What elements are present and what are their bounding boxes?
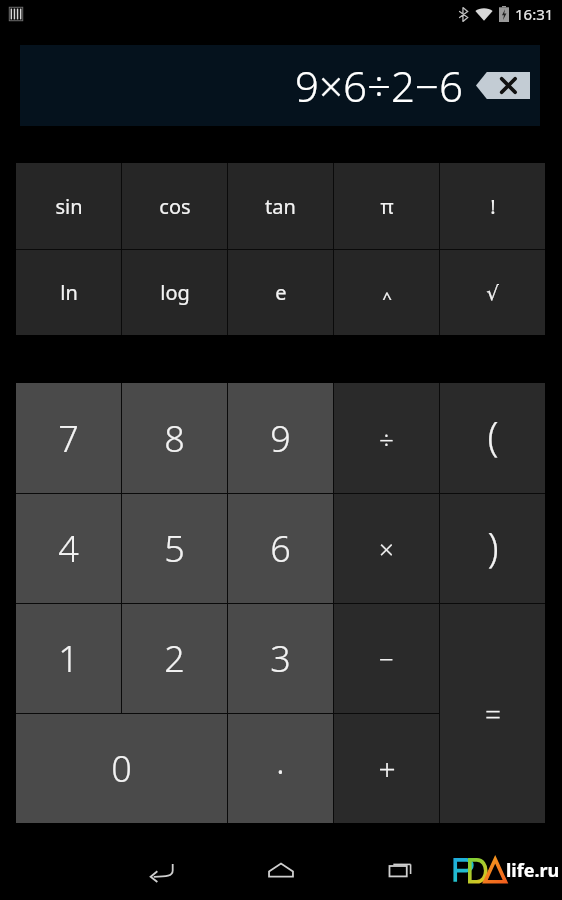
staticText: 8 [164,414,185,463]
button[interactable]: . [228,714,333,823]
button[interactable]: × [334,494,439,603]
staticText: life.ru [506,858,560,883]
staticText: 3 [270,634,291,683]
staticText: ( [487,408,499,462]
button[interactable]: 7 [16,383,121,493]
button[interactable]: + [334,714,439,823]
button[interactable]: − [334,604,439,713]
button[interactable]: = [440,604,545,823]
staticText: e [275,279,287,306]
button[interactable]: ( [440,383,545,493]
button[interactable]: π [334,163,439,249]
staticText: 2 [164,634,185,683]
staticText: 7 [58,414,79,463]
staticText: ln [60,279,78,306]
staticText: + [378,748,396,789]
button[interactable]: 9 [228,383,333,493]
button[interactable]: 6 [228,494,333,603]
staticText: tan [265,193,296,220]
staticText: √ [486,281,499,304]
button[interactable]: 1 [16,604,121,713]
button[interactable]: sin [16,163,121,249]
button[interactable]: 9×6÷2−6 [20,45,540,126]
button[interactable]: √ [440,250,545,335]
staticText: ! [490,193,496,220]
staticText: 9 [270,414,291,463]
button[interactable]: cos [122,163,227,249]
button[interactable]: 0 [16,714,227,823]
staticText: 4 [58,524,79,573]
button[interactable]: tan [228,163,333,249]
staticText: ÷ [379,421,394,456]
button[interactable]: 2 [122,604,227,713]
staticText: sin [55,193,83,220]
staticText: . [276,736,285,785]
button[interactable]: ^ [334,250,439,335]
staticText: 9×6÷2−6 [295,57,463,114]
button[interactable]: 3 [228,604,333,713]
button[interactable]: e [228,250,333,335]
button[interactable]: Home [257,846,305,894]
staticText: = [485,695,501,733]
button[interactable]: 5 [122,494,227,603]
button[interactable]: ÷ [334,383,439,493]
button[interactable]: Back [137,846,185,894]
button[interactable]: ln [16,250,121,335]
staticText: 1 [58,634,79,683]
button[interactable]: log [122,250,227,335]
staticText: 5 [164,524,185,573]
button[interactable]: 4 [16,494,121,603]
button[interactable]: ) [440,494,545,603]
staticText: π [380,193,394,220]
staticText: ^ [382,286,392,309]
staticText: log [160,279,190,306]
staticText: 6 [270,524,291,573]
button[interactable]: ! [440,163,545,249]
staticText: − [379,641,394,676]
staticText: × [379,531,394,566]
staticText: 16:31 [515,4,554,24]
staticText: 0 [111,744,132,793]
staticText: ) [487,519,499,573]
button[interactable]: Recent apps [377,846,425,894]
button[interactable]: 8 [122,383,227,493]
button[interactable]: Backspace [476,72,530,99]
staticText: cos [159,193,191,220]
